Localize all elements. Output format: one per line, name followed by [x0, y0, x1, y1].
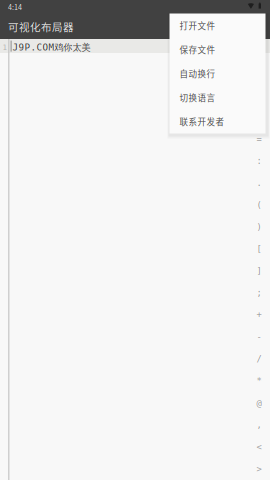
- button[interactable]: Insert ;: [248, 282, 270, 304]
- staticText: [: [256, 244, 261, 254]
- staticText: -: [256, 332, 261, 342]
- staticText: 可视化布局器: [8, 19, 74, 34]
- staticText: *: [256, 376, 261, 386]
- staticText: <: [256, 442, 261, 452]
- button[interactable]: Insert @: [248, 392, 270, 414]
- button[interactable]: Insert .: [248, 172, 270, 194]
- button[interactable]: Insert <: [248, 436, 270, 458]
- staticText: ): [256, 222, 261, 232]
- staticText: @: [256, 398, 261, 408]
- button[interactable]: Insert [: [248, 238, 270, 260]
- button[interactable]: 联系开发者: [169, 109, 265, 133]
- button[interactable]: Insert =: [248, 128, 270, 150]
- staticText: ,: [256, 420, 261, 430]
- button[interactable]: 切换语言: [169, 85, 265, 109]
- staticText: ;: [256, 288, 261, 298]
- staticText: 保存文件: [179, 43, 215, 56]
- staticText: (: [256, 200, 261, 210]
- button[interactable]: Insert *: [248, 370, 270, 392]
- staticText: .: [256, 178, 261, 188]
- staticText: 自动换行: [179, 67, 215, 80]
- staticText: ]: [256, 266, 261, 276]
- staticText: 4:14: [8, 2, 22, 12]
- staticText: 1: [3, 43, 7, 52]
- staticText: 打开文件: [179, 19, 215, 32]
- staticText: +: [256, 310, 261, 320]
- button[interactable]: 打开文件: [169, 13, 265, 37]
- button[interactable]: 自动换行: [169, 61, 265, 85]
- button[interactable]: Insert +: [248, 304, 270, 326]
- button[interactable]: Insert -: [248, 326, 270, 348]
- staticText: >: [256, 464, 261, 474]
- button[interactable]: 保存文件: [169, 37, 265, 61]
- button[interactable]: Insert ]: [248, 260, 270, 282]
- button[interactable]: Insert /: [248, 348, 270, 370]
- staticText: /: [256, 354, 261, 364]
- staticText: 切换语言: [179, 91, 215, 104]
- button[interactable]: Insert ): [248, 216, 270, 238]
- staticText: :: [256, 156, 261, 166]
- button[interactable]: Insert ,: [248, 414, 270, 436]
- button[interactable]: Insert :: [248, 150, 270, 172]
- button[interactable]: Insert >: [248, 458, 270, 480]
- button[interactable]: Insert (: [248, 194, 270, 216]
- staticText: 联系开发者: [179, 115, 224, 128]
- staticText: J9P.COM鸡你太美: [13, 42, 91, 53]
- staticText: =: [256, 134, 261, 144]
